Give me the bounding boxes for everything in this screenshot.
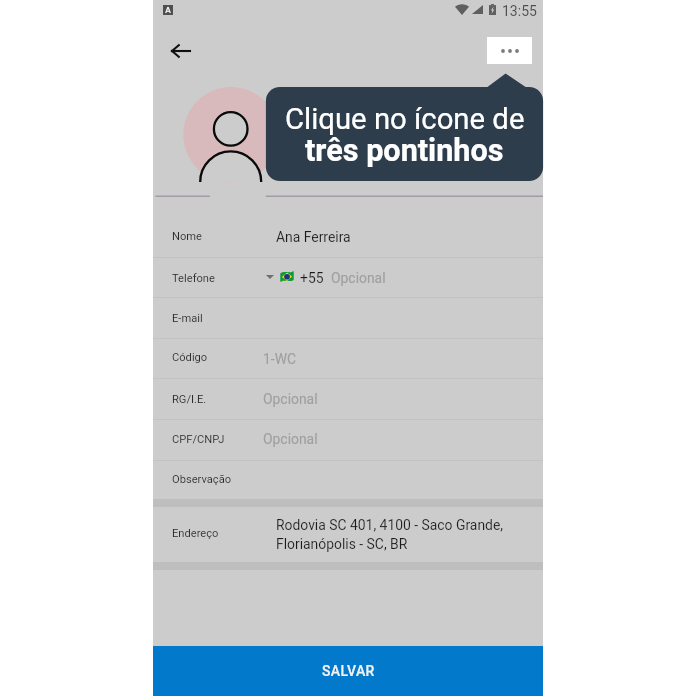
staticText: Observação [172, 473, 232, 486]
staticText: Ana Ferreira [276, 229, 351, 245]
button[interactable] [153, 506, 543, 562]
button[interactable]: Mais opções [487, 37, 532, 64]
staticText: Nome [172, 230, 202, 243]
button[interactable] [153, 419, 543, 460]
staticText: RG/I.E. [172, 393, 207, 406]
button[interactable] [266, 87, 543, 181]
staticText: 13:55 [502, 3, 537, 19]
staticText: +55 [300, 270, 324, 286]
staticText: Clique no ícone de [285, 102, 525, 136]
button[interactable] [153, 298, 543, 339]
button[interactable] [153, 460, 543, 498]
staticText: SALVAR [322, 663, 375, 679]
button[interactable] [153, 338, 543, 379]
staticText: Telefone [172, 272, 215, 285]
staticText: Endereço [172, 527, 219, 540]
button[interactable] [153, 379, 543, 420]
staticText: três pontinhos [305, 133, 504, 169]
staticText: 1-WC [263, 351, 297, 367]
staticText: Rodovia SC 401, 4100 - Saco Grande, Flor… [276, 517, 504, 552]
button[interactable] [153, 257, 543, 298]
staticText: Opcional [263, 391, 318, 407]
staticText: Código [172, 351, 208, 364]
button[interactable] [153, 197, 543, 257]
button[interactable]: Voltar [156, 27, 204, 75]
button[interactable]: SALVAR [153, 646, 543, 696]
staticText: E-mail [172, 312, 203, 325]
staticText: CPF/CNPJ [172, 433, 225, 446]
staticText: Opcional [263, 431, 318, 447]
staticText: Opcional [331, 270, 386, 286]
